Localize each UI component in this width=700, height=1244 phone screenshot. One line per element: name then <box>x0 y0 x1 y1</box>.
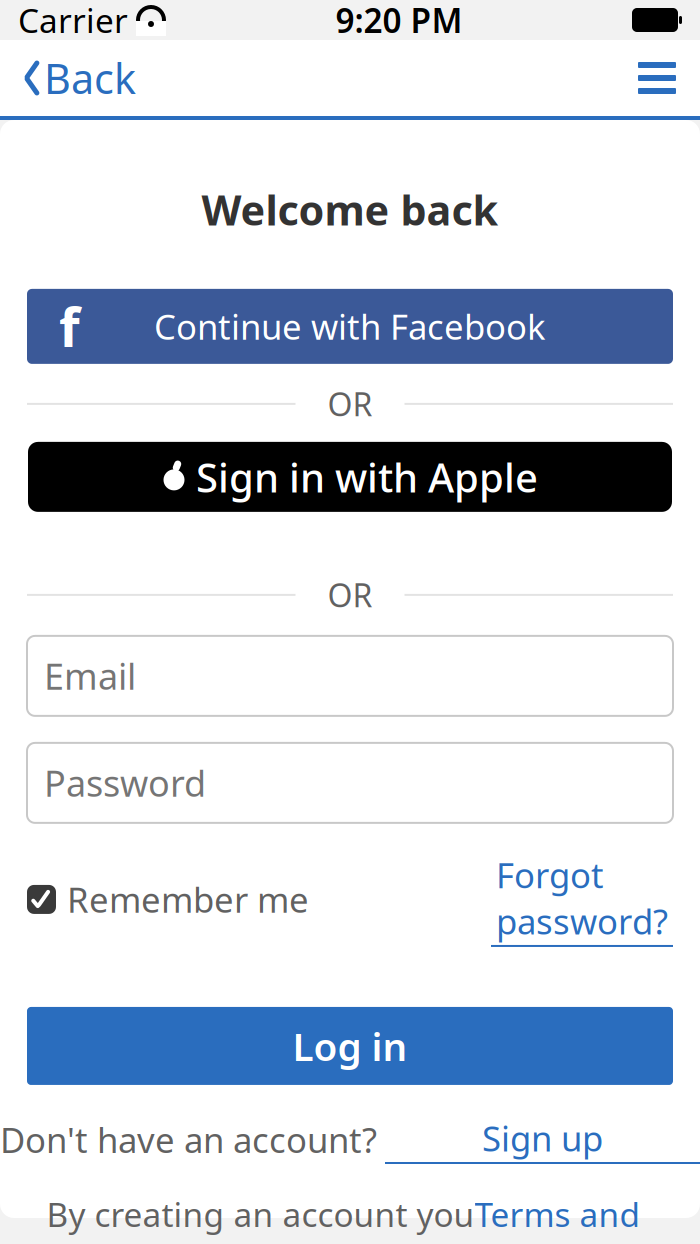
staticText: Continue with Facebook <box>154 303 546 349</box>
staticText: Password <box>44 759 206 807</box>
staticText: OR <box>327 574 372 616</box>
staticText: Sign up <box>482 1115 603 1161</box>
staticText: OR <box>327 383 372 425</box>
button[interactable]: Terms and Conditions <box>474 1192 644 1244</box>
staticText: Sign in with Apple <box>196 450 538 503</box>
staticText: 9:20 PM <box>335 0 462 42</box>
staticText: By creating an account you agree to our <box>46 1192 474 1244</box>
staticText: Remember me <box>67 876 309 922</box>
staticText: . <box>644 1214 653 1244</box>
button[interactable]: Back <box>10 41 148 115</box>
button[interactable]: Log in <box>27 1007 673 1085</box>
button[interactable]: Menu <box>624 50 690 106</box>
staticText: Log in <box>292 1020 407 1072</box>
staticText: f <box>59 291 80 362</box>
button[interactable]: Email <box>27 636 673 716</box>
button[interactable]: Sign up <box>385 1115 700 1164</box>
staticText: Terms and Conditions <box>474 1192 644 1244</box>
button[interactable]: Password <box>27 743 673 823</box>
staticText: Back <box>44 51 136 105</box>
staticText: Welcome back <box>201 182 498 237</box>
button[interactable]: Forgot password? <box>491 846 673 953</box>
staticText: Don't have an account? <box>0 1116 377 1162</box>
button[interactable]: Continue with Facebook <box>27 289 673 364</box>
staticText: Forgot password? <box>496 852 668 944</box>
staticText: Email <box>44 652 136 700</box>
button[interactable]: Sign in with Apple <box>28 442 672 512</box>
button[interactable]: Remember me <box>27 870 309 928</box>
staticText: Carrier <box>18 0 128 42</box>
